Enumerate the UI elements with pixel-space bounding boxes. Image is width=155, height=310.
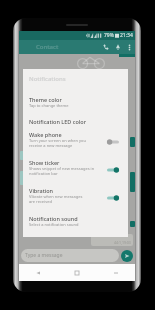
staticText: Contact <box>36 43 59 51</box>
staticText: Theme color <box>29 96 62 103</box>
staticText: Type a message <box>25 252 63 259</box>
staticText: 21:34 <box>120 32 133 39</box>
staticText: Shows snippet of new messages in notific… <box>29 166 95 176</box>
button[interactable]: Send <box>121 250 133 262</box>
staticText: Show ticker <box>29 159 60 166</box>
staticText: Turn your screen on when you receive a n… <box>29 138 86 148</box>
button[interactable]: Call <box>100 41 112 53</box>
staticText: Vibration <box>29 187 54 194</box>
staticText: Vibrate when new messages are received <box>29 194 83 204</box>
staticText: Wake phone <box>29 131 62 138</box>
button[interactable]: Type a message <box>21 249 119 262</box>
staticText: Notification sound <box>29 215 78 222</box>
staticText: 79% <box>104 32 114 39</box>
staticText: Notification LED color <box>29 118 87 125</box>
button[interactable]: Notification sound <box>23 215 128 237</box>
staticText: Tap to change theme <box>29 103 69 108</box>
button[interactable]: Recents <box>110 267 122 279</box>
button[interactable]: Notification LED color <box>23 118 128 131</box>
staticText: Notifications <box>29 75 66 83</box>
button[interactable]: Show ticker <box>23 159 128 181</box>
staticText: Select a notification sound <box>29 222 79 227</box>
button[interactable]: Wake phone <box>23 131 128 153</box>
staticText: 44:1,19:03 <box>114 240 131 245</box>
button[interactable]: Home <box>71 267 83 279</box>
button[interactable]: Back <box>32 267 44 279</box>
button[interactable]: Mute notifications <box>112 41 124 53</box>
button[interactable]: Vibration <box>23 187 128 209</box>
button[interactable]: More options <box>124 42 134 52</box>
button[interactable]: Theme color <box>23 96 128 118</box>
